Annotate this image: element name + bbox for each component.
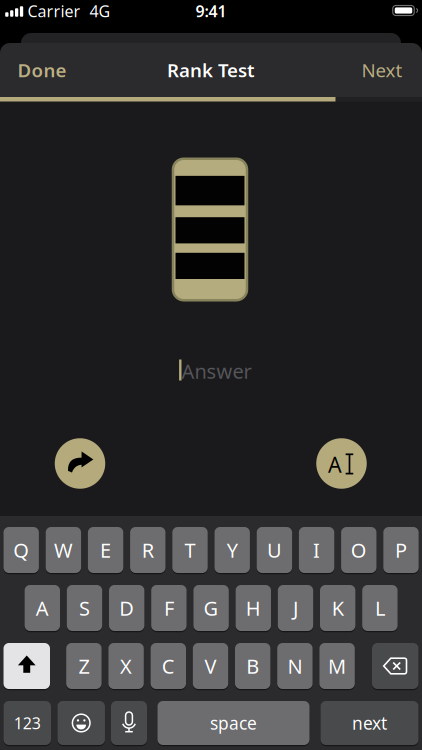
button[interactable]: L: [362, 585, 398, 631]
staticText: 4G: [89, 0, 110, 22]
button[interactable]: E: [88, 527, 123, 573]
staticText: Carrier: [27, 0, 80, 22]
button[interactable]: Next: [361, 58, 402, 82]
button[interactable]: I: [299, 527, 334, 573]
staticText: L: [375, 595, 385, 621]
button[interactable]: Z: [66, 643, 102, 689]
staticText: P: [395, 537, 407, 563]
staticText: V: [204, 653, 216, 679]
button[interactable]: Y: [214, 527, 250, 573]
button[interactable]: O: [341, 527, 376, 573]
staticText: Next: [361, 58, 402, 82]
button[interactable]: S: [67, 585, 102, 631]
staticText: Y: [227, 537, 238, 563]
button[interactable]: Skip: [55, 438, 105, 489]
button[interactable]: V: [193, 643, 228, 689]
button[interactable]: Text answer: [316, 438, 367, 489]
button[interactable]: next: [320, 701, 418, 745]
staticText: M: [328, 653, 346, 679]
button[interactable]: N: [277, 643, 313, 689]
button[interactable]: Emoji: [57, 701, 105, 745]
staticText: A: [36, 595, 49, 621]
button[interactable]: C: [151, 643, 186, 689]
staticText: B: [246, 653, 259, 679]
button[interactable]: X: [108, 643, 144, 689]
staticText: H: [246, 595, 261, 621]
staticText: next: [352, 711, 387, 734]
button[interactable]: D: [109, 585, 144, 631]
button[interactable]: Done: [17, 58, 66, 82]
staticText: Answer: [181, 358, 251, 384]
staticText: Q: [13, 537, 29, 563]
staticText: J: [293, 595, 298, 621]
button[interactable]: space: [157, 701, 309, 745]
staticText: 123: [14, 712, 41, 734]
button[interactable]: U: [257, 527, 292, 573]
staticText: K: [332, 595, 344, 621]
staticText: F: [164, 595, 174, 621]
staticText: W: [54, 537, 73, 563]
button[interactable]: T: [172, 527, 208, 573]
button[interactable]: A: [25, 585, 60, 631]
button[interactable]: K: [320, 585, 355, 631]
button[interactable]: Delete: [372, 643, 418, 689]
button[interactable]: G: [193, 585, 229, 631]
staticText: X: [120, 653, 132, 679]
staticText: N: [287, 653, 302, 679]
staticText: I: [313, 537, 320, 563]
button[interactable]: J: [278, 585, 313, 631]
button[interactable]: P: [383, 527, 419, 573]
button[interactable]: M: [319, 643, 355, 689]
staticText: R: [142, 537, 154, 563]
staticText: A: [328, 450, 342, 479]
staticText: O: [351, 537, 367, 563]
staticText: S: [79, 595, 90, 621]
staticText: U: [267, 537, 282, 563]
button[interactable]: Q: [3, 527, 39, 573]
staticText: C: [162, 653, 175, 679]
staticText: T: [184, 537, 195, 563]
button[interactable]: F: [151, 585, 187, 631]
button[interactable]: H: [236, 585, 271, 631]
staticText: Done: [17, 58, 66, 82]
staticText: 9:41: [195, 0, 226, 22]
button[interactable]: Dictate: [111, 701, 147, 745]
staticText: Z: [78, 653, 89, 679]
button[interactable]: R: [130, 527, 165, 573]
button[interactable]: Numbers: [3, 701, 51, 745]
button[interactable]: W: [46, 527, 81, 573]
staticText: D: [119, 595, 134, 621]
staticText: Rank Test: [167, 58, 255, 82]
staticText: G: [204, 595, 219, 621]
button[interactable]: Shift: [3, 643, 50, 689]
staticText: space: [210, 711, 257, 734]
staticText: E: [100, 537, 111, 563]
button[interactable]: B: [235, 643, 270, 689]
